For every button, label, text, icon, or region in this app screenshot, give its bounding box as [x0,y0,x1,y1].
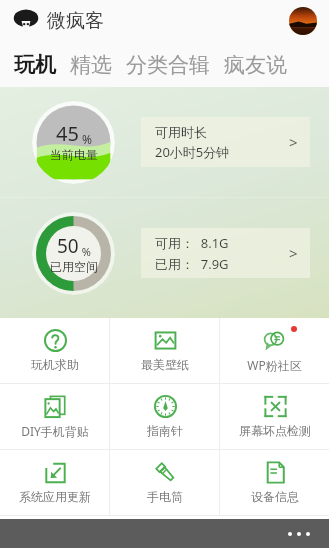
staticText: 当前电量 [50,147,98,162]
button[interactable]: 玩机求助 [0,318,109,383]
staticText: 玩机求助 [31,357,79,372]
staticText: 20小时5分钟 [155,143,230,161]
staticText: 精选 [70,52,112,78]
button[interactable]: More options [269,519,329,548]
button[interactable]: 系统应用更新 [0,450,109,515]
button[interactable]: 分类合辑 [124,50,212,80]
staticText: 指南针 [147,423,183,438]
staticText: 最美壁纸 [141,357,189,372]
staticText: 手电筒 [147,489,183,504]
button[interactable]: 精选 [68,50,114,80]
button[interactable]: 50 [32,212,115,295]
staticText: 已用空间 [50,259,98,274]
button[interactable]: 疯友说 [222,50,289,80]
button[interactable]: 最美壁纸 [110,318,219,383]
staticText: 设备信息 [251,489,299,504]
staticText: % [79,131,93,147]
staticText: 可用时长 [155,124,207,140]
button[interactable]: 设备信息 [220,450,329,515]
staticText: 系统应用更新 [19,489,91,504]
staticText: % [79,244,92,259]
button[interactable]: 玩机 [12,50,58,80]
staticText: DIY手机背贴 [21,423,89,439]
button[interactable]: 屏幕坏点检测 [220,384,329,449]
button[interactable]: DIY手机背贴 [0,384,109,449]
button[interactable]: WP粉社区 [220,318,329,383]
staticText: 玩机 [14,52,56,78]
button[interactable]: 手电筒 [110,450,219,515]
staticText: 可用： 8.1G [155,234,229,252]
staticText: 已用： 7.9G [155,255,229,273]
button[interactable]: 指南针 [110,384,219,449]
staticText: WP粉社区 [247,357,302,373]
staticText: > [289,132,298,152]
staticText: 屏幕坏点检测 [239,423,311,438]
staticText: 50 [57,233,79,259]
button[interactable]: Profile [289,7,317,35]
button[interactable]: 可用： 8.1G [141,228,310,278]
button[interactable]: 45 [32,101,115,184]
staticText: 疯友说 [224,52,287,78]
staticText: 45 [56,120,79,147]
staticText: 分类合辑 [126,52,210,78]
staticText: > [289,243,298,263]
button[interactable]: 可用时长 [141,117,310,167]
staticText: 微疯客 [47,9,104,33]
